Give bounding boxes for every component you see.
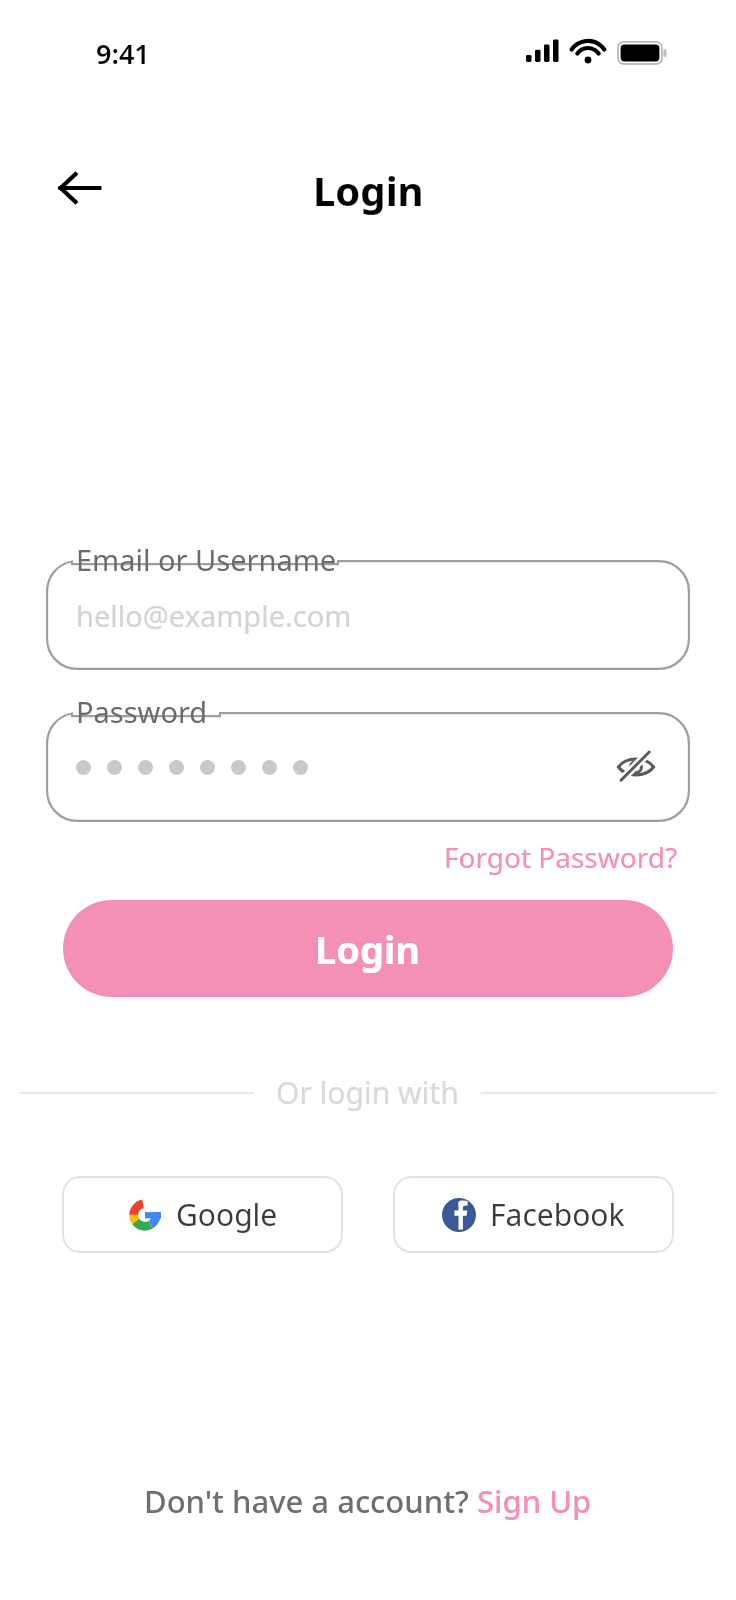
staticText: 9:41: [96, 35, 150, 72]
staticText: Facebook: [490, 1194, 625, 1235]
staticText: Login: [313, 163, 424, 217]
button[interactable]: Toggle password visibility: [610, 741, 662, 793]
staticText: Login: [315, 923, 421, 975]
staticText: Don't have a account?: [144, 1480, 477, 1522]
staticText: Password: [76, 692, 208, 731]
button[interactable]: Facebook: [393, 1176, 674, 1253]
button[interactable]: Login: [63, 900, 673, 997]
staticText: hello@example.com: [76, 596, 352, 635]
staticText: Google: [176, 1194, 278, 1235]
button[interactable]: Forgot Password?: [444, 838, 678, 876]
staticText: Or login with: [276, 1072, 459, 1113]
staticText: Email or Username: [76, 540, 337, 579]
button[interactable]: Google: [62, 1176, 343, 1253]
button[interactable]: Back: [42, 150, 118, 226]
button[interactable]: Sign Up: [477, 1480, 592, 1522]
